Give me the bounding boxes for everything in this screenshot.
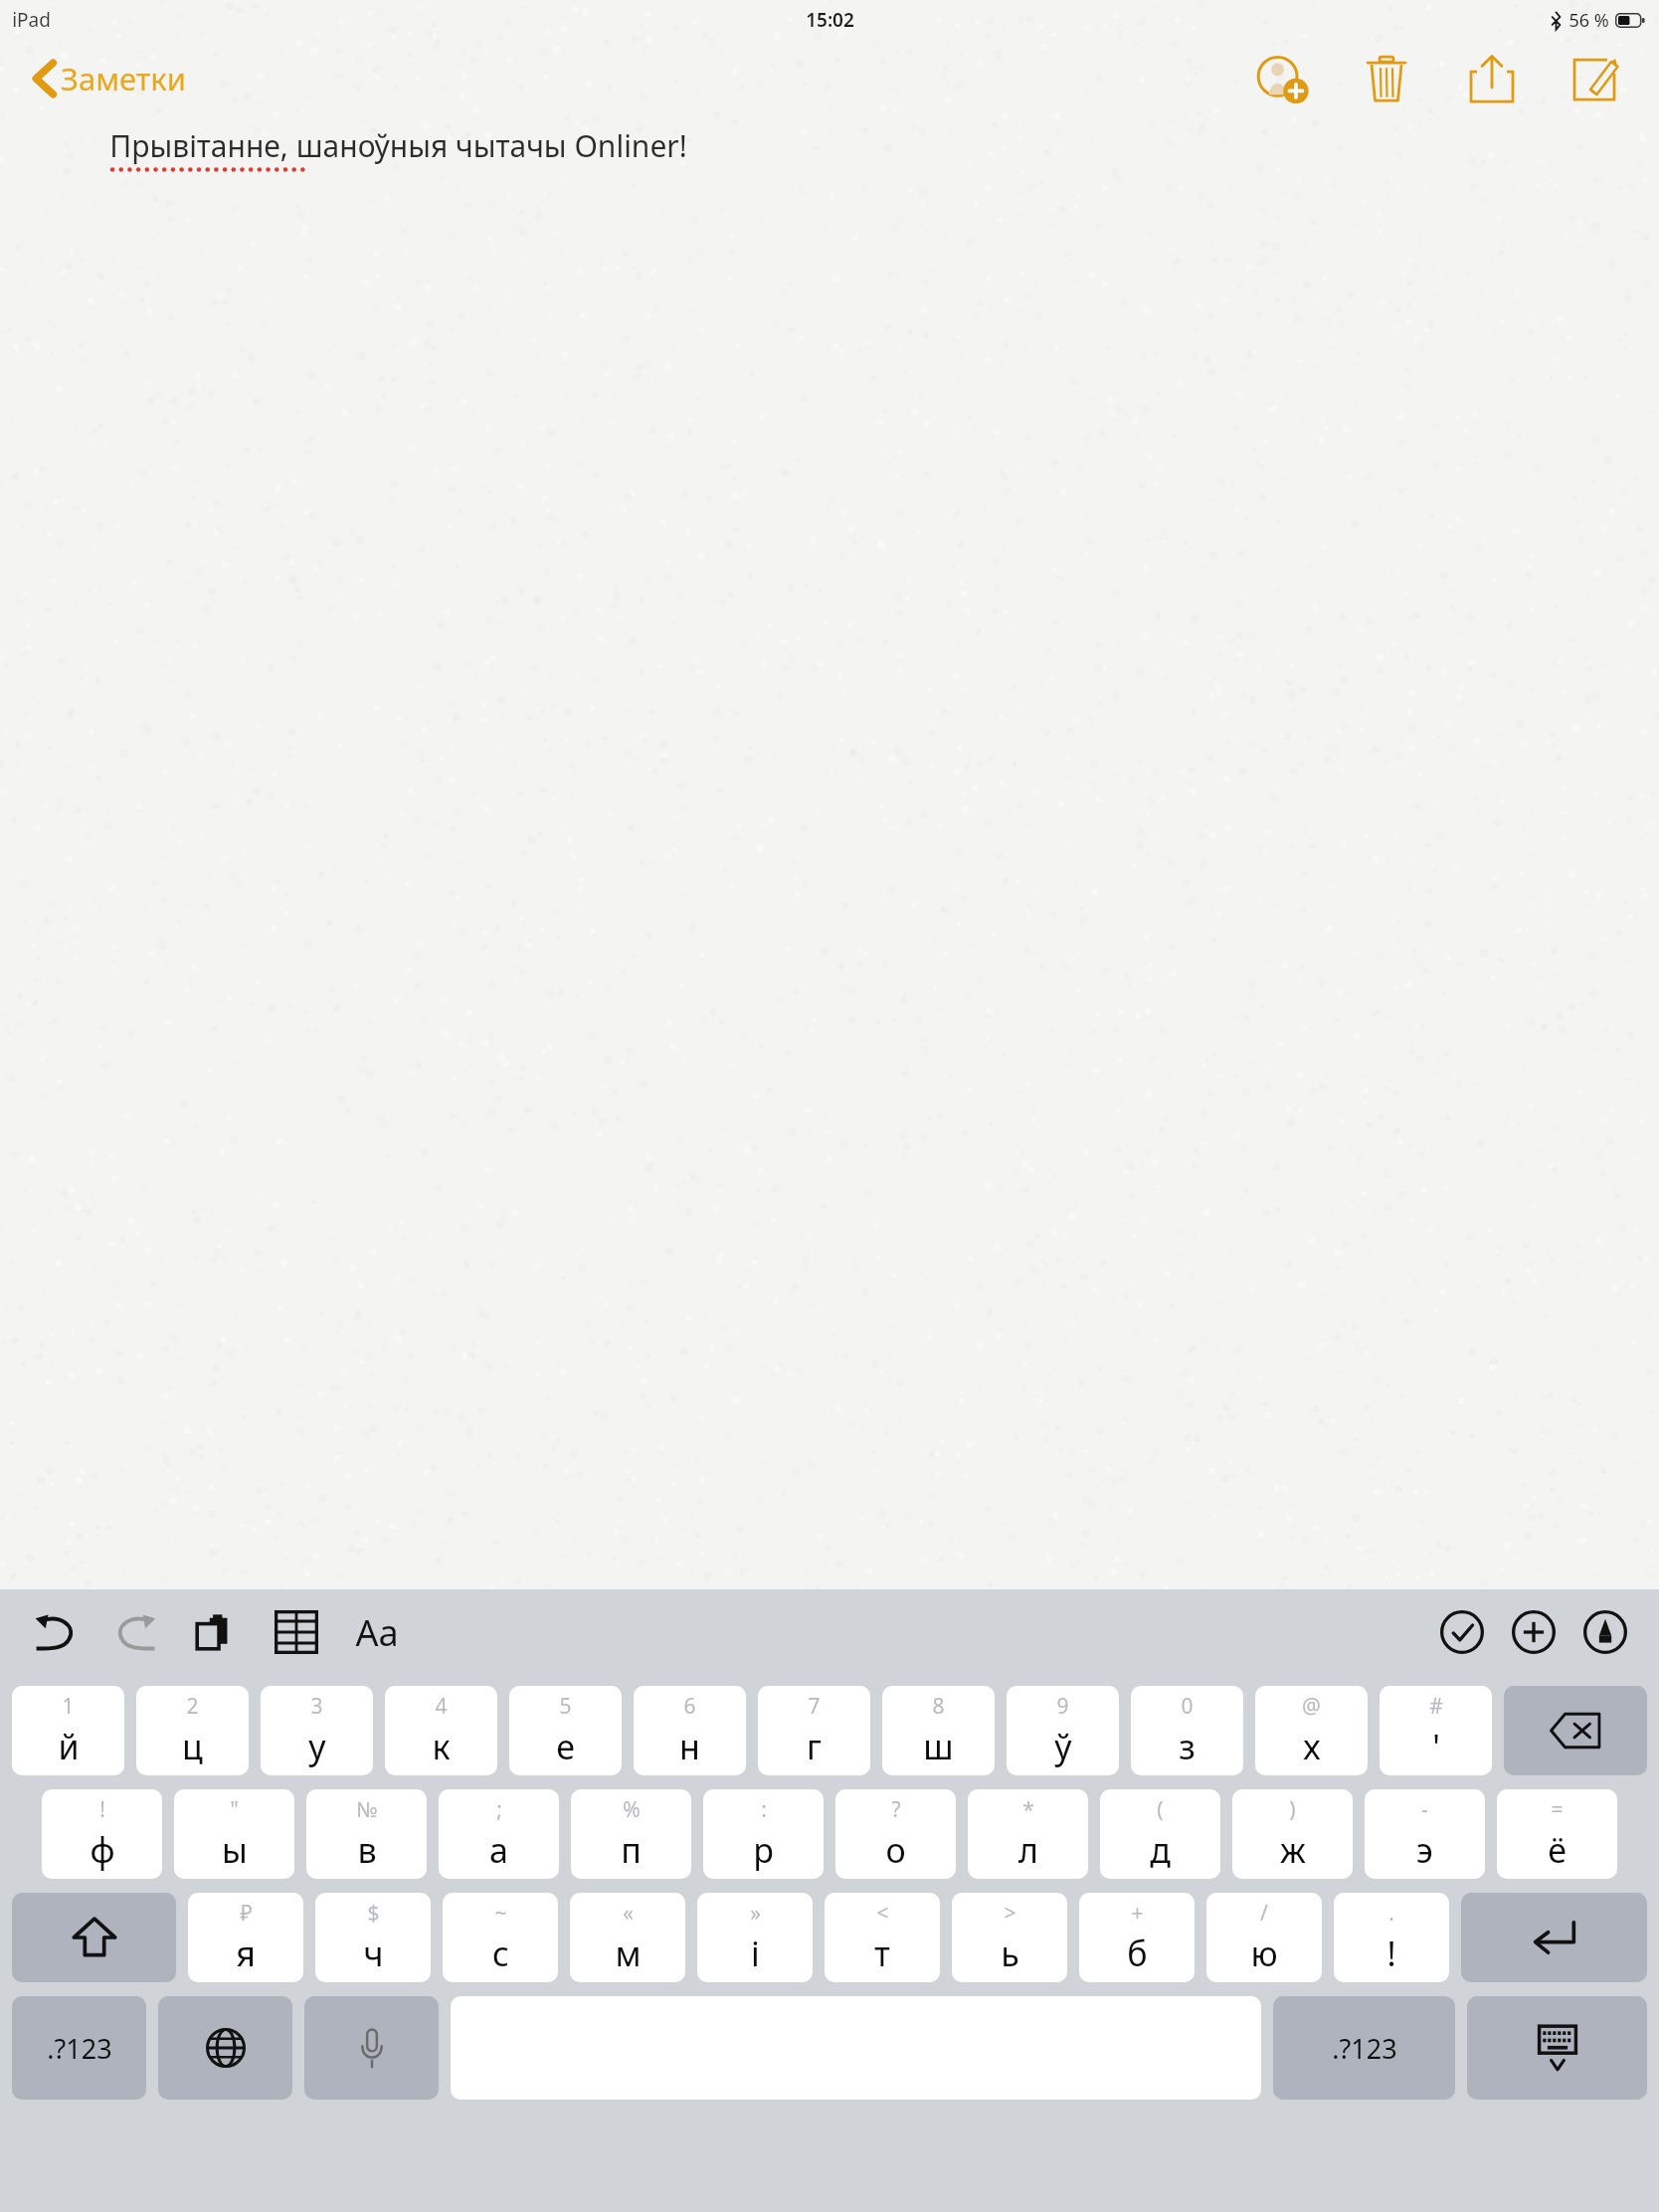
button[interactable]: 9 <box>1007 1686 1119 1775</box>
button[interactable]: > <box>952 1893 1067 1982</box>
button[interactable]: " <box>174 1789 294 1879</box>
button[interactable]: * <box>968 1789 1088 1879</box>
staticText: * <box>1022 1795 1034 1824</box>
staticText: к <box>432 1724 451 1769</box>
button[interactable]: $ <box>315 1893 431 1982</box>
button[interactable]: Paste <box>187 1605 241 1659</box>
staticText: д <box>1150 1827 1171 1873</box>
staticText: : <box>761 1795 767 1824</box>
staticText: 56 % <box>1568 8 1609 33</box>
staticText: « <box>623 1899 634 1928</box>
staticText: ! <box>99 1795 105 1824</box>
staticText: ( <box>1157 1795 1164 1824</box>
staticText: і <box>751 1931 760 1976</box>
staticText: » <box>750 1899 761 1928</box>
button[interactable]: ? <box>835 1789 956 1879</box>
button[interactable]: Заметки <box>34 58 186 99</box>
button[interactable]: 4 <box>385 1686 497 1775</box>
staticText: / <box>1260 1899 1268 1928</box>
staticText: ч <box>363 1931 384 1976</box>
button[interactable]: globe <box>158 1996 292 2100</box>
staticText: ы <box>222 1827 248 1873</box>
staticText: у <box>308 1724 326 1769</box>
staticText: ) <box>1289 1795 1296 1824</box>
button[interactable]: 1 <box>12 1686 124 1775</box>
staticText: Прывітанне, шаноўныя чытачы Onliner! <box>109 125 687 166</box>
staticText: т <box>874 1931 890 1976</box>
button[interactable]: 6 <box>634 1686 746 1775</box>
button[interactable]: 0 <box>1131 1686 1243 1775</box>
button[interactable]: Table <box>269 1604 324 1660</box>
button[interactable]: № <box>306 1789 427 1879</box>
staticText: ў <box>1054 1724 1072 1769</box>
button[interactable]: ~ <box>443 1893 558 1982</box>
staticText: < <box>876 1899 889 1928</box>
button[interactable]: 5 <box>509 1686 622 1775</box>
staticText: с <box>492 1931 509 1976</box>
staticText: 1 <box>62 1692 75 1721</box>
staticText: ₽ <box>240 1899 253 1928</box>
staticText: й <box>58 1724 80 1769</box>
button[interactable]: Add attachment <box>1506 1604 1562 1660</box>
button[interactable]: : <box>703 1789 824 1879</box>
button[interactable]: hide <box>1467 1996 1647 2100</box>
button[interactable]: Delete <box>1355 47 1418 110</box>
staticText: б <box>1127 1931 1148 1976</box>
button[interactable]: ! <box>42 1789 162 1879</box>
button[interactable]: = <box>1497 1789 1617 1879</box>
button[interactable]: backspace <box>1504 1686 1647 1775</box>
button[interactable]: Markup <box>1577 1604 1633 1660</box>
staticText: з <box>1179 1724 1196 1769</box>
staticText: ю <box>1250 1931 1278 1976</box>
staticText: 4 <box>435 1692 448 1721</box>
staticText: 2 <box>186 1692 199 1721</box>
button[interactable]: mic <box>304 1996 439 2100</box>
button[interactable]: - <box>1365 1789 1485 1879</box>
staticText: 6 <box>683 1692 696 1721</box>
staticText: 5 <box>559 1692 572 1721</box>
button[interactable]: + <box>1079 1893 1195 1982</box>
button[interactable]: Redo <box>107 1603 165 1661</box>
button[interactable]: space <box>451 1996 1261 2100</box>
button[interactable]: Aa <box>346 1607 408 1657</box>
staticText: $ <box>367 1899 380 1928</box>
staticText: г <box>807 1724 822 1769</box>
button[interactable]: 2 <box>136 1686 249 1775</box>
button[interactable]: ; <box>439 1789 559 1879</box>
button[interactable]: Share <box>1460 47 1524 110</box>
button[interactable]: Add people <box>1249 45 1317 112</box>
button[interactable]: ) <box>1232 1789 1353 1879</box>
staticText: ; <box>496 1795 502 1824</box>
staticText: № <box>356 1795 378 1824</box>
button[interactable]: ₽ <box>188 1893 303 1982</box>
staticText: ! <box>1386 1931 1396 1976</box>
staticText: н <box>679 1724 700 1769</box>
staticText: э <box>1416 1827 1433 1873</box>
button[interactable]: 7 <box>758 1686 870 1775</box>
button[interactable]: return <box>1461 1893 1647 1982</box>
button[interactable]: shift <box>12 1893 176 1982</box>
button[interactable]: # <box>1380 1686 1492 1775</box>
button[interactable]: .?123 <box>1273 1996 1455 2100</box>
button[interactable]: 3 <box>261 1686 373 1775</box>
staticText: . <box>1388 1899 1394 1928</box>
staticText: ~ <box>494 1899 507 1928</box>
staticText: iPad <box>12 7 51 33</box>
button[interactable]: @ <box>1255 1686 1368 1775</box>
button[interactable]: 8 <box>882 1686 995 1775</box>
staticText: ш <box>923 1724 954 1769</box>
staticText: м <box>615 1931 642 1976</box>
button[interactable]: ( <box>1100 1789 1220 1879</box>
button[interactable]: Checklist <box>1434 1604 1490 1660</box>
button[interactable]: » <box>697 1893 813 1982</box>
button[interactable]: % <box>571 1789 691 1879</box>
staticText: # <box>1429 1692 1443 1721</box>
button[interactable]: < <box>825 1893 940 1982</box>
button[interactable]: / <box>1206 1893 1322 1982</box>
button[interactable]: . <box>1334 1893 1449 1982</box>
button[interactable]: Undo <box>26 1603 84 1661</box>
button[interactable]: New note <box>1564 47 1627 110</box>
button[interactable]: .?123 <box>12 1996 146 2100</box>
staticText: 3 <box>310 1692 323 1721</box>
button[interactable]: « <box>570 1893 685 1982</box>
